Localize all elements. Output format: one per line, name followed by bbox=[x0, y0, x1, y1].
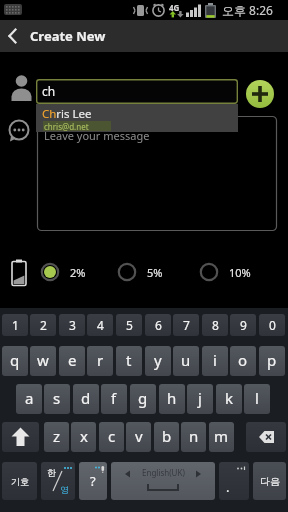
button[interactable]: Leave your message bbox=[37, 116, 277, 231]
button[interactable]: b bbox=[154, 422, 179, 452]
staticText: b bbox=[162, 426, 172, 446]
button[interactable]: l bbox=[244, 384, 270, 414]
staticText: z bbox=[53, 426, 61, 446]
staticText: g bbox=[138, 388, 148, 408]
staticText: j bbox=[198, 388, 202, 408]
button[interactable]: d bbox=[73, 384, 99, 414]
button[interactable]: 10% bbox=[199, 262, 251, 282]
button[interactable]: g bbox=[130, 384, 156, 414]
staticText: w bbox=[37, 350, 49, 370]
button[interactable]: 2% bbox=[40, 262, 86, 282]
staticText: 다음 bbox=[260, 475, 280, 488]
button[interactable]: y bbox=[145, 346, 171, 376]
staticText: a bbox=[25, 388, 34, 408]
button[interactable]: h bbox=[159, 384, 185, 414]
staticText: n bbox=[189, 426, 199, 446]
button[interactable]: w bbox=[30, 346, 56, 376]
button[interactable] bbox=[246, 422, 286, 452]
button[interactable]: m bbox=[209, 422, 234, 452]
staticText: x bbox=[80, 426, 88, 446]
button[interactable]: ch bbox=[36, 79, 238, 104]
button[interactable]: 2 bbox=[30, 314, 56, 336]
staticText: 3 bbox=[69, 317, 76, 333]
staticText: 5% bbox=[147, 265, 163, 280]
button[interactable]: i bbox=[202, 346, 228, 376]
staticText: s bbox=[53, 388, 61, 408]
staticText: 2 bbox=[40, 317, 47, 333]
button[interactable]: English(UK) bbox=[111, 462, 215, 500]
staticText: l bbox=[255, 388, 259, 408]
staticText: t bbox=[126, 350, 132, 370]
button[interactable]: . bbox=[219, 462, 249, 500]
button[interactable]: 3 bbox=[59, 314, 85, 336]
staticText: u bbox=[181, 350, 191, 370]
staticText: f bbox=[111, 388, 117, 408]
button[interactable]: z bbox=[44, 422, 69, 452]
staticText: 4G bbox=[169, 2, 180, 13]
button[interactable]: a bbox=[16, 384, 42, 414]
staticText: chris@d.net bbox=[44, 121, 89, 131]
button[interactable]: v bbox=[126, 422, 151, 452]
button[interactable] bbox=[0, 20, 28, 52]
button[interactable]: s bbox=[44, 384, 70, 414]
staticText: 9 bbox=[240, 317, 247, 333]
staticText: ? bbox=[90, 472, 96, 490]
button[interactable]: 6 bbox=[145, 314, 171, 336]
staticText: 2% bbox=[70, 265, 86, 280]
staticText: 영 bbox=[60, 484, 69, 495]
staticText: i bbox=[213, 350, 217, 370]
button[interactable]: 8 bbox=[202, 314, 228, 336]
button[interactable]: 5 bbox=[116, 314, 142, 336]
staticText: m bbox=[214, 426, 229, 446]
staticText: 한 bbox=[47, 467, 56, 478]
button[interactable]: r bbox=[87, 346, 113, 376]
staticText: r bbox=[97, 350, 104, 370]
button[interactable]: p bbox=[259, 346, 285, 376]
staticText: 1 bbox=[12, 317, 19, 333]
button[interactable]: 4 bbox=[87, 314, 113, 336]
button[interactable]: o bbox=[230, 346, 256, 376]
staticText: English(UK) bbox=[142, 467, 185, 478]
button[interactable]: 1 bbox=[2, 314, 28, 336]
button[interactable]: 기호 bbox=[2, 462, 37, 500]
button[interactable]: ? bbox=[79, 462, 107, 500]
button[interactable] bbox=[246, 80, 274, 108]
button[interactable]: f bbox=[101, 384, 127, 414]
staticText: 4 bbox=[97, 317, 104, 333]
button[interactable]: 0 bbox=[259, 314, 285, 336]
button[interactable]: c bbox=[99, 422, 124, 452]
button[interactable]: Chris Lee bbox=[36, 104, 238, 132]
staticText: y bbox=[154, 350, 162, 370]
staticText: 기호 bbox=[11, 476, 29, 487]
staticText: 0 bbox=[269, 317, 276, 333]
button[interactable]: 9 bbox=[230, 314, 256, 336]
staticText: c bbox=[108, 426, 116, 446]
button[interactable]: t bbox=[116, 346, 142, 376]
button[interactable]: u bbox=[173, 346, 199, 376]
staticText: o bbox=[238, 350, 248, 370]
staticText: ch bbox=[42, 83, 56, 99]
button[interactable]: k bbox=[216, 384, 242, 414]
staticText: v bbox=[135, 426, 143, 446]
staticText: Create New bbox=[30, 27, 106, 45]
staticText: 5 bbox=[126, 317, 133, 333]
button[interactable]: 한 bbox=[41, 462, 75, 500]
button[interactable]: 5% bbox=[117, 262, 163, 282]
button[interactable]: e bbox=[59, 346, 85, 376]
staticText: 10% bbox=[229, 265, 251, 280]
button[interactable] bbox=[2, 422, 39, 452]
button[interactable]: x bbox=[71, 422, 96, 452]
button[interactable]: n bbox=[181, 422, 206, 452]
staticText: e bbox=[68, 350, 77, 370]
staticText: 6 bbox=[155, 317, 162, 333]
staticText: d bbox=[81, 388, 91, 408]
button[interactable]: j bbox=[187, 384, 213, 414]
staticText: 오후 8:26 bbox=[222, 2, 273, 18]
button[interactable]: q bbox=[2, 346, 28, 376]
staticText: k bbox=[225, 388, 234, 408]
staticText: p bbox=[267, 350, 277, 370]
staticText: q bbox=[10, 350, 20, 370]
button[interactable]: 다음 bbox=[253, 462, 286, 500]
staticText: Chris Lee bbox=[42, 106, 92, 122]
button[interactable]: 7 bbox=[173, 314, 199, 336]
